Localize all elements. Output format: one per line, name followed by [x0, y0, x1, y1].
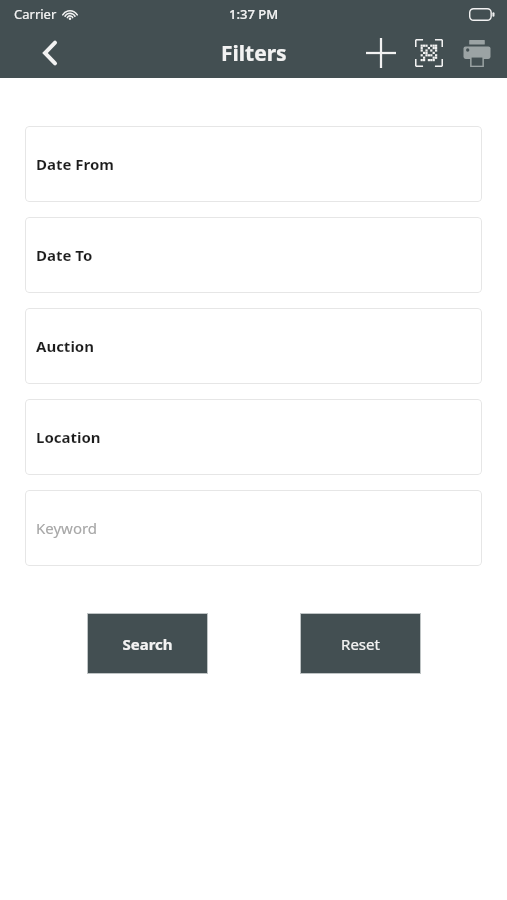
button[interactable]: Date From: [25, 126, 482, 202]
staticText: Date To: [36, 245, 93, 265]
staticText: Auction: [36, 336, 94, 356]
button[interactable]: Print: [453, 29, 501, 77]
staticText: Reset: [341, 634, 380, 654]
staticText: Location: [36, 427, 101, 447]
staticText: Carrier: [14, 5, 57, 23]
button[interactable]: Search: [87, 613, 208, 674]
button[interactable]: Location: [25, 399, 482, 475]
button[interactable]: Auction: [25, 308, 482, 384]
staticText: Keyword: [36, 518, 98, 538]
button[interactable]: Add: [357, 29, 405, 77]
button[interactable]: Back: [28, 31, 72, 75]
staticText: 1:37 PM: [229, 5, 279, 23]
button[interactable]: Keyword: [25, 490, 482, 566]
button[interactable]: Date To: [25, 217, 482, 293]
button[interactable]: Reset: [300, 613, 421, 674]
button[interactable]: Scan QR code: [405, 29, 453, 77]
staticText: Search: [122, 634, 173, 654]
staticText: Filters: [221, 39, 287, 68]
staticText: Date From: [36, 154, 114, 174]
